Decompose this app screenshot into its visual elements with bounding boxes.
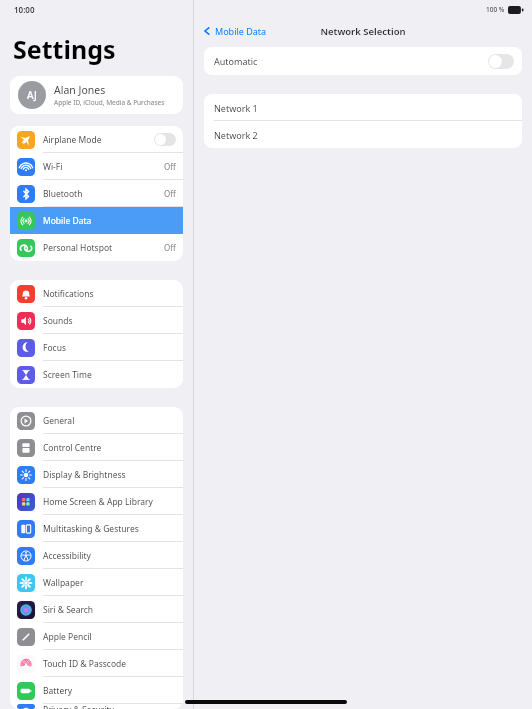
button[interactable]: Mobile Data [202, 25, 267, 37]
staticText: Wallpaper [43, 577, 176, 589]
staticText: Apple ID, iCloud, Media & Purchases [54, 98, 165, 107]
staticText: Alan Jones [54, 83, 106, 97]
staticText: Off [164, 188, 176, 199]
button[interactable]: Sounds [10, 307, 183, 334]
button[interactable]: Network 1 [204, 94, 522, 121]
button[interactable]: Focus [10, 334, 183, 361]
staticText: Bluetooth [43, 188, 164, 200]
staticText: Battery [43, 685, 176, 697]
button[interactable]: Apple Pencil [10, 623, 183, 650]
staticText: 10:00 [14, 4, 35, 15]
staticText: Airplane Mode [43, 134, 154, 146]
button[interactable]: Airplane Mode toggle [154, 133, 176, 146]
button[interactable]: Control Centre [10, 434, 183, 461]
button[interactable]: Screen Time [10, 361, 183, 388]
staticText: 100 % [486, 5, 505, 14]
staticText: Focus [43, 342, 176, 354]
staticText: Wi-Fi [43, 161, 164, 173]
staticText: Accessibility [43, 550, 176, 562]
staticText: Mobile Data [215, 25, 267, 37]
staticText: Siri & Search [43, 604, 176, 616]
staticText: Off [164, 242, 176, 253]
staticText: Privacy & Security [43, 704, 176, 709]
staticText: Screen Time [43, 369, 176, 381]
button[interactable]: Wallpaper [10, 569, 183, 596]
staticText: Mobile Data [43, 215, 176, 227]
staticText: Network 1 [214, 102, 258, 114]
button[interactable]: Privacy & Security [10, 704, 183, 709]
button[interactable]: Wi-Fi [10, 153, 183, 180]
button[interactable]: AJ [10, 76, 183, 114]
staticText: Off [164, 161, 176, 172]
staticText: Network Selection [320, 25, 406, 38]
staticText: AJ [27, 88, 37, 102]
button[interactable]: Battery [10, 677, 183, 704]
staticText: Sounds [43, 315, 176, 327]
button[interactable]: Network 2 [204, 121, 522, 148]
staticText: Touch ID & Passcode [43, 658, 176, 670]
button[interactable]: Notifications [10, 280, 183, 307]
button[interactable]: Touch ID & Passcode [10, 650, 183, 677]
button[interactable]: Mobile Data [10, 207, 183, 234]
staticText: Control Centre [43, 442, 176, 454]
staticText: Network 2 [214, 129, 258, 141]
staticText: Settings [13, 32, 116, 66]
staticText: Notifications [43, 288, 176, 300]
button[interactable]: General [10, 407, 183, 434]
button[interactable]: Automatic [204, 47, 522, 75]
staticText: Home Screen & App Library [43, 496, 176, 508]
staticText: Automatic [214, 55, 258, 67]
staticText: Multitasking & Gestures [43, 523, 176, 535]
button[interactable]: Personal Hotspot [10, 234, 183, 261]
button[interactable]: Airplane Mode [10, 126, 183, 153]
staticText: Personal Hotspot [43, 242, 164, 254]
button[interactable]: Automatic network selection toggle [488, 54, 514, 69]
button[interactable]: Multitasking & Gestures [10, 515, 183, 542]
button[interactable]: Bluetooth [10, 180, 183, 207]
button[interactable]: Accessibility [10, 542, 183, 569]
staticText: General [43, 415, 176, 427]
staticText: Apple Pencil [43, 631, 176, 643]
staticText: Display & Brightness [43, 469, 176, 481]
button[interactable]: Home Screen & App Library [10, 488, 183, 515]
button[interactable]: Display & Brightness [10, 461, 183, 488]
button[interactable]: Siri & Search [10, 596, 183, 623]
